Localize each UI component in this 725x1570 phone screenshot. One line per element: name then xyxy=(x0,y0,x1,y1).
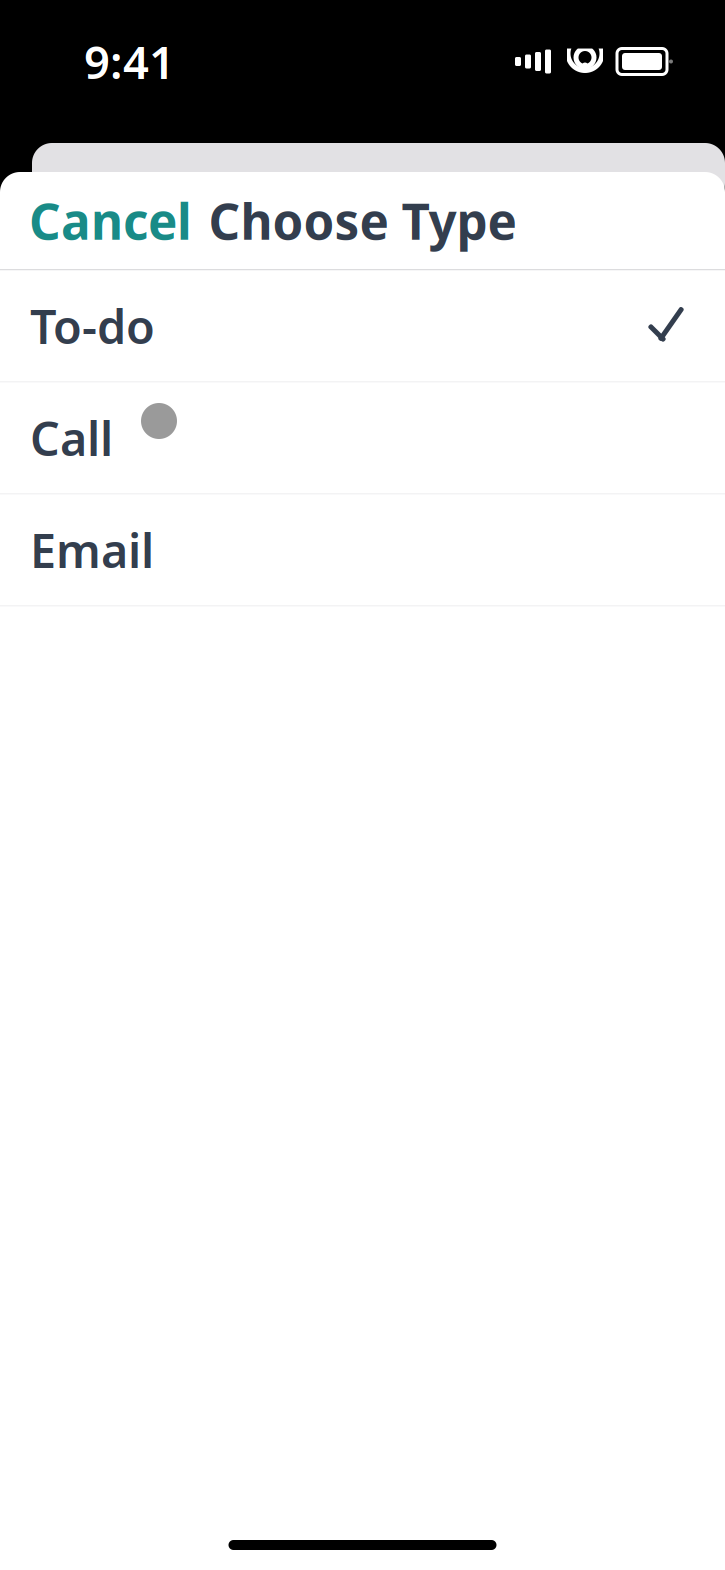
button[interactable]: To-do xyxy=(0,270,725,381)
staticText: Cancel xyxy=(29,188,192,253)
staticText: Call xyxy=(30,407,113,469)
staticText: To-do xyxy=(30,295,155,357)
staticText: Email xyxy=(30,519,154,581)
button[interactable]: Email xyxy=(0,494,725,605)
button[interactable]: Cancel xyxy=(0,166,221,275)
staticText: Choose Type xyxy=(208,188,516,253)
button[interactable]: Call xyxy=(0,382,725,493)
staticText: 9:41 xyxy=(84,31,175,92)
